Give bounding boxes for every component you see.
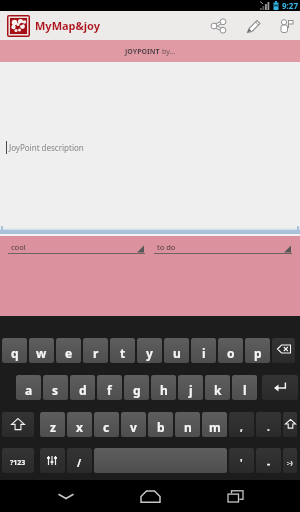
button[interactable]: [40, 448, 65, 473]
button[interactable]: m: [202, 412, 227, 437]
button[interactable]: u: [164, 338, 189, 363]
button[interactable]: ?123: [2, 448, 34, 473]
button[interactable]: f: [97, 375, 122, 400]
button[interactable]: [271, 11, 300, 40]
button[interactable]: [272, 338, 295, 363]
staticText: k: [214, 382, 222, 398]
button[interactable]: [108, 480, 193, 512]
button[interactable]: t: [110, 338, 135, 363]
staticText: t: [120, 345, 126, 361]
button[interactable]: a: [16, 375, 41, 400]
staticText: m: [209, 419, 221, 435]
button[interactable]: k: [205, 375, 230, 400]
button[interactable]: o: [218, 338, 243, 363]
staticText: r: [93, 345, 99, 361]
button[interactable]: [283, 412, 297, 437]
button[interactable]: j: [178, 375, 203, 400]
button[interactable]: to do: [154, 237, 292, 254]
button[interactable]: y: [137, 338, 162, 363]
staticText: h: [160, 382, 168, 398]
staticText: a: [25, 382, 33, 398]
staticText: o: [227, 345, 235, 361]
button[interactable]: q: [2, 338, 27, 363]
staticText: z: [50, 419, 56, 435]
button[interactable]: h: [151, 375, 176, 400]
staticText: JOYPOINT: [125, 47, 162, 57]
staticText: g: [133, 382, 141, 398]
button[interactable]: i: [191, 338, 216, 363]
button[interactable]: d: [70, 375, 95, 400]
staticText: /: [77, 456, 82, 470]
button[interactable]: ': [229, 448, 254, 473]
staticText: n: [184, 419, 192, 435]
button[interactable]: -: [256, 448, 281, 473]
staticText: u: [173, 345, 181, 361]
staticText: p: [254, 345, 262, 361]
button[interactable]: r: [83, 338, 108, 363]
button[interactable]: x: [67, 412, 92, 437]
staticText: .: [267, 420, 270, 434]
button[interactable]: [262, 375, 298, 400]
staticText: w: [36, 345, 47, 361]
button[interactable]: v: [121, 412, 146, 437]
button[interactable]: w: [29, 338, 54, 363]
staticText: cool: [11, 242, 26, 252]
button[interactable]: [201, 11, 236, 40]
button[interactable]: p: [245, 338, 270, 363]
button[interactable]: [193, 480, 278, 512]
button[interactable]: ,: [229, 412, 254, 437]
button[interactable]: l: [232, 375, 257, 400]
button[interactable]: cool: [8, 237, 145, 254]
button[interactable]: c: [94, 412, 119, 437]
button[interactable]: z: [40, 412, 65, 437]
button[interactable]: n: [175, 412, 200, 437]
staticText: by...: [162, 47, 176, 57]
staticText: y: [146, 345, 153, 361]
staticText: s: [52, 382, 59, 398]
button[interactable]: JoyPoint description: [0, 62, 300, 236]
button[interactable]: :-): [283, 448, 297, 473]
staticText: j: [189, 382, 193, 398]
button[interactable]: .: [256, 412, 281, 437]
button[interactable]: s: [43, 375, 68, 400]
staticText: JoyPoint description: [9, 142, 84, 153]
button[interactable]: [2, 412, 34, 437]
button[interactable]: [236, 11, 271, 40]
staticText: q: [11, 345, 19, 361]
staticText: ': [240, 456, 243, 470]
staticText: d: [79, 382, 87, 398]
staticText: e: [65, 345, 73, 361]
staticText: to do: [157, 242, 176, 252]
staticText: 9:27: [282, 0, 298, 11]
staticText: ,: [240, 420, 243, 434]
staticText: v: [130, 419, 137, 435]
button[interactable]: JOYPOINT: [0, 40, 300, 62]
button[interactable]: e: [56, 338, 81, 363]
button[interactable]: b: [148, 412, 173, 437]
staticText: MyMap&joy: [35, 18, 101, 33]
staticText: :-): [287, 459, 293, 467]
staticText: b: [157, 419, 165, 435]
staticText: i: [202, 345, 206, 361]
button[interactable]: [23, 480, 108, 512]
staticText: c: [103, 419, 110, 435]
staticText: x: [76, 419, 83, 435]
button[interactable]: [94, 448, 227, 473]
button[interactable]: /: [67, 448, 92, 473]
staticText: f: [107, 382, 112, 398]
staticText: -: [267, 456, 271, 470]
staticText: l: [243, 382, 247, 398]
button[interactable]: g: [124, 375, 149, 400]
staticText: ?123: [10, 458, 26, 468]
